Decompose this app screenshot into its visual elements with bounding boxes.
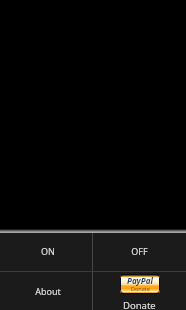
- button[interactable]: ON: [0, 233, 92, 271]
- staticText: OFF: [131, 245, 148, 257]
- staticText: About: [35, 285, 61, 297]
- staticText: Donate: [131, 285, 150, 292]
- button[interactable]: Donate with PayPal: [93, 272, 186, 310]
- button[interactable]: OFF: [93, 233, 186, 271]
- button[interactable]: Donate with PayPal: [120, 274, 160, 294]
- button[interactable]: About: [0, 272, 92, 310]
- staticText: PayPal: [127, 275, 153, 286]
- staticText: Donate: [123, 299, 156, 310]
- staticText: ON: [41, 245, 55, 257]
